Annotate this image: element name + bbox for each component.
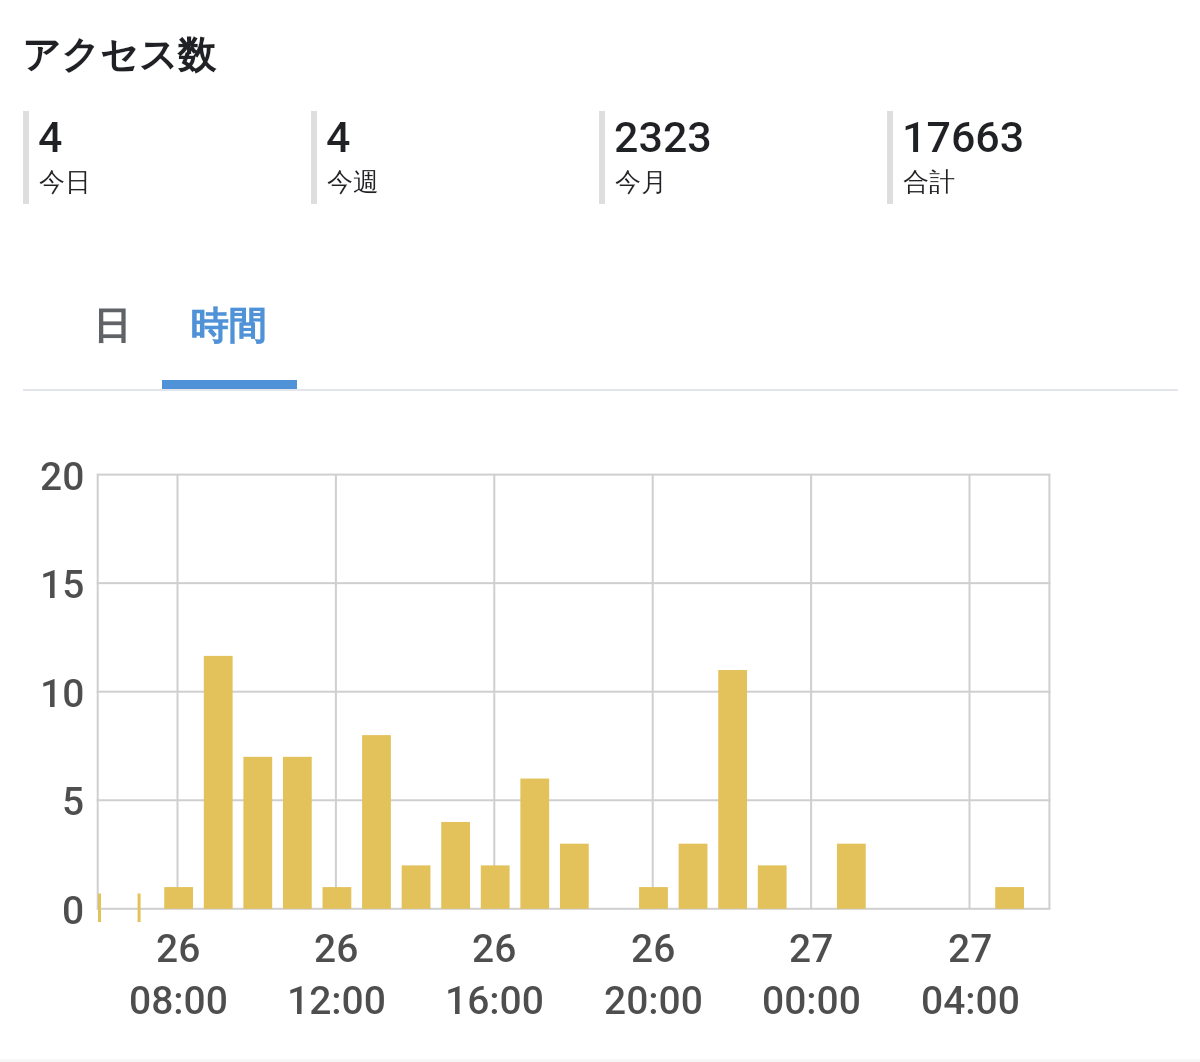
staticText: 20 xyxy=(40,454,85,500)
staticText: 時間 xyxy=(190,302,266,350)
button[interactable]: 4 xyxy=(311,104,581,210)
staticText: 27 xyxy=(789,926,834,972)
button[interactable]: 17663 xyxy=(887,104,1157,210)
staticText: 2323 xyxy=(614,112,712,162)
staticText: 4 xyxy=(326,112,351,162)
staticText: 合計 xyxy=(903,166,955,199)
staticText: 12:00 xyxy=(287,978,386,1024)
staticText: 4 xyxy=(38,112,63,162)
staticText: 26 xyxy=(156,926,201,972)
staticText: 今月 xyxy=(615,166,667,199)
staticText: 00:00 xyxy=(762,978,861,1024)
staticText: 5 xyxy=(62,779,85,825)
staticText: 今週 xyxy=(327,166,379,199)
staticText: 15 xyxy=(40,562,85,608)
staticText: 26 xyxy=(472,926,517,972)
staticText: 0 xyxy=(62,888,85,934)
button[interactable]: 日 xyxy=(44,275,179,389)
staticText: 26 xyxy=(631,926,676,972)
staticText: 20:00 xyxy=(604,978,703,1024)
staticText: 日 xyxy=(93,302,131,350)
button[interactable]: 4 xyxy=(23,104,293,210)
staticText: アクセス数 xyxy=(22,31,216,79)
staticText: 26 xyxy=(314,926,359,972)
button[interactable]: 時間 xyxy=(160,275,295,389)
staticText: 08:00 xyxy=(129,978,228,1024)
staticText: 10 xyxy=(40,671,85,717)
staticText: 04:00 xyxy=(921,978,1020,1024)
button[interactable]: 2323 xyxy=(599,104,869,210)
staticText: 今日 xyxy=(39,166,91,199)
button[interactable]: Hourly access chart xyxy=(96,474,1051,910)
staticText: 16:00 xyxy=(445,978,544,1024)
staticText: 17663 xyxy=(902,112,1025,162)
staticText: 27 xyxy=(948,926,993,972)
